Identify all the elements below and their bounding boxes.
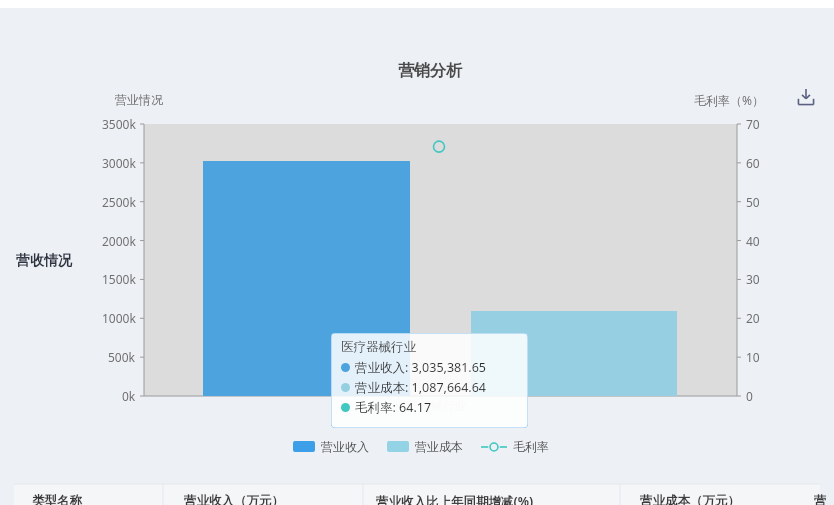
button[interactable]: 营业收入 <box>293 439 369 454</box>
staticText: 医疗器械行业 <box>341 339 416 355</box>
staticText: 医疗器械行业 <box>395 398 467 413</box>
staticText: 营业成本 <box>415 439 463 454</box>
staticText: 0 <box>746 388 753 404</box>
button[interactable]: Download <box>793 84 819 110</box>
staticText: 10 <box>746 349 760 365</box>
button[interactable]: 营收情况 <box>0 8 834 505</box>
staticText: 营业成本: 1,087,664.64 <box>355 379 487 396</box>
staticText: 营业情况 <box>115 92 163 107</box>
staticText: 20 <box>746 310 760 326</box>
staticText: 70 <box>746 116 760 132</box>
staticText: 毛利率 <box>513 439 549 454</box>
staticText: 营收情况 <box>16 252 72 270</box>
staticText: 500k <box>108 349 136 365</box>
staticText: 类型名称 <box>32 493 82 505</box>
staticText: 营销分析 <box>398 61 462 81</box>
staticText: 3000k <box>102 155 136 171</box>
staticText: 3500k <box>102 116 136 132</box>
staticText: 60 <box>746 155 760 171</box>
staticText: 营 <box>814 493 827 505</box>
staticText: 营业收入: 3,035,381.65 <box>355 359 487 376</box>
staticText: 毛利率（%） <box>694 92 764 108</box>
staticText: 1500k <box>102 271 136 287</box>
staticText: 营业收入比上年同期增减(%) <box>376 493 534 505</box>
staticText: 2000k <box>102 233 136 249</box>
button[interactable]: 毛利率 <box>481 439 549 454</box>
staticText: 30 <box>746 271 760 287</box>
staticText: 营业收入 <box>321 439 369 454</box>
staticText: 50 <box>746 194 760 210</box>
staticText: 0k <box>122 388 136 404</box>
staticText: 营业收入（万元） <box>184 493 284 505</box>
staticText: 40 <box>746 233 760 249</box>
button[interactable]: 医疗器械行业 <box>331 333 528 428</box>
staticText: 毛利率: 64.17 <box>355 399 432 416</box>
staticText: 1000k <box>102 310 136 326</box>
staticText: 营业成本（万元） <box>640 493 740 505</box>
button[interactable]: 营业成本 <box>387 439 463 454</box>
staticText: 2500k <box>102 194 136 210</box>
